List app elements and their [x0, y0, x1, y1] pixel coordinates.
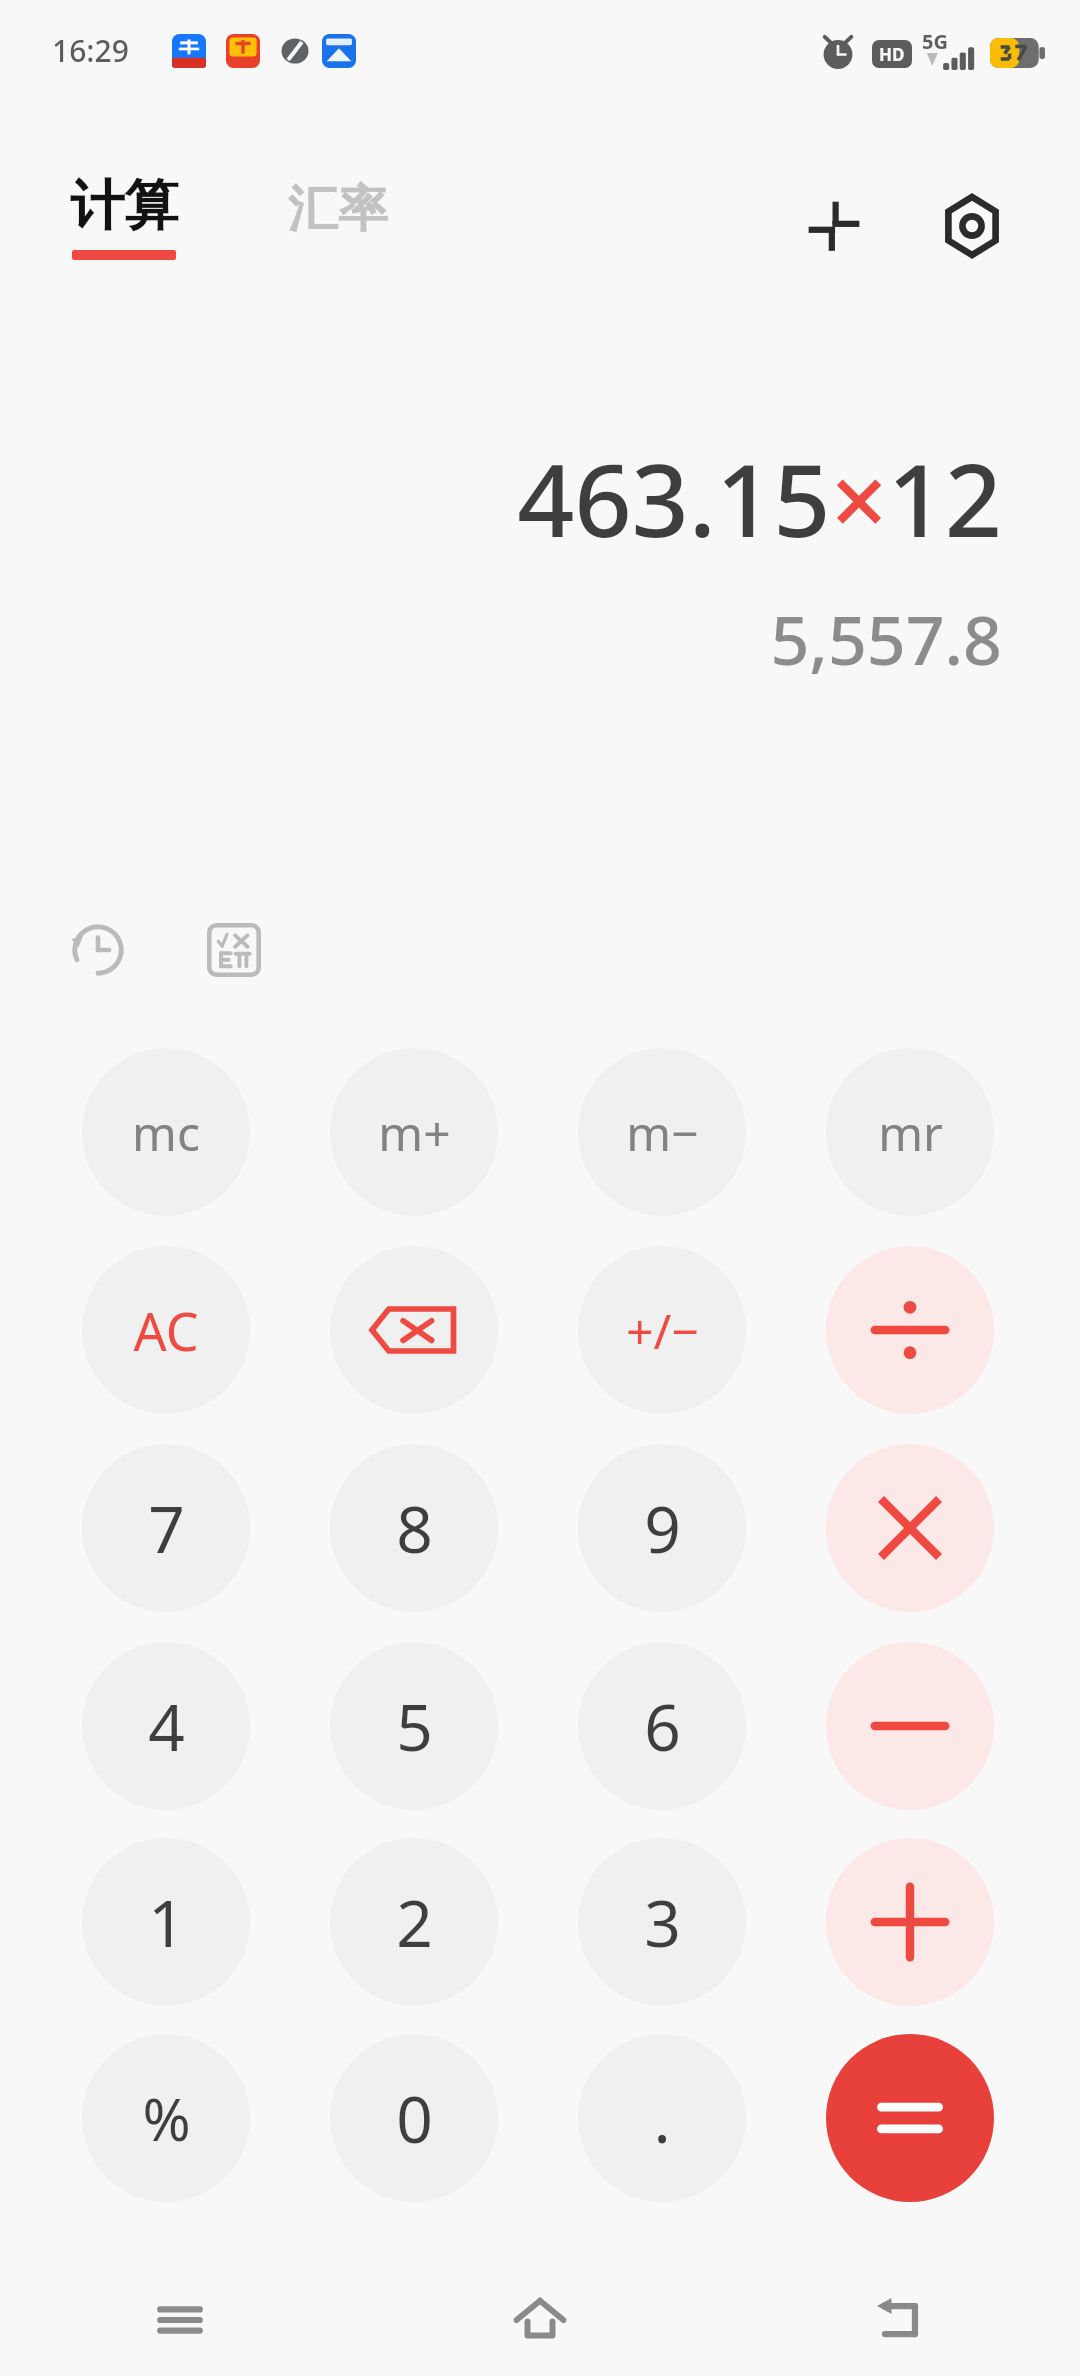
- staticText: 9: [644, 1485, 681, 1572]
- button[interactable]: Home: [360, 2264, 720, 2376]
- button[interactable]: 汇率: [288, 178, 388, 241]
- button[interactable]: mr: [826, 1048, 994, 1216]
- button[interactable]: %: [82, 2034, 250, 2202]
- staticText: 2: [396, 1879, 433, 1966]
- button[interactable]: Plus: [826, 1838, 994, 2006]
- button[interactable]: 1: [82, 1838, 250, 2006]
- button[interactable]: 2: [330, 1838, 498, 2006]
- staticText: m−: [626, 1100, 699, 1165]
- button[interactable]: Equals: [826, 2034, 994, 2202]
- staticText: 5,557.8: [770, 592, 1002, 685]
- staticText: 1: [148, 1879, 185, 1966]
- staticText: 6: [644, 1683, 681, 1770]
- staticText: 计算: [70, 172, 178, 240]
- button[interactable]: Scientific mode: [182, 898, 286, 1002]
- button[interactable]: 6: [578, 1642, 746, 1810]
- button[interactable]: Minus: [826, 1642, 994, 1810]
- button[interactable]: .: [578, 2034, 746, 2202]
- button[interactable]: 3: [578, 1838, 746, 2006]
- button[interactable]: Backspace: [330, 1246, 498, 1414]
- button[interactable]: 计算: [70, 172, 178, 260]
- staticText: 463.15×12: [517, 430, 1002, 566]
- button[interactable]: 9: [578, 1444, 746, 1612]
- staticText: 5: [396, 1683, 433, 1770]
- staticText: 16:29: [52, 30, 129, 71]
- staticText: %: [142, 2079, 191, 2158]
- button[interactable]: m+: [330, 1048, 498, 1216]
- button[interactable]: AC: [82, 1246, 250, 1414]
- staticText: 7: [148, 1485, 185, 1572]
- button[interactable]: mc: [82, 1048, 250, 1216]
- staticText: AC: [133, 1295, 199, 1366]
- button[interactable]: Multiply: [826, 1444, 994, 1612]
- button[interactable]: History: [46, 898, 150, 1002]
- staticText: mr: [878, 1100, 943, 1165]
- button[interactable]: Divide: [826, 1246, 994, 1414]
- staticText: +/−: [626, 1298, 699, 1363]
- staticText: m+: [378, 1100, 451, 1165]
- staticText: HD: [879, 43, 905, 66]
- button[interactable]: 7: [82, 1444, 250, 1612]
- staticText: 3: [644, 1879, 681, 1966]
- staticText: 8: [396, 1485, 433, 1572]
- button[interactable]: 4: [82, 1642, 250, 1810]
- button[interactable]: Recents: [0, 2264, 360, 2376]
- button[interactable]: Settings: [928, 182, 1016, 270]
- staticText: 4: [148, 1683, 185, 1770]
- staticText: 0: [396, 2075, 433, 2162]
- staticText: 汇率: [288, 178, 388, 241]
- button[interactable]: 8: [330, 1444, 498, 1612]
- button[interactable]: Back: [720, 2264, 1080, 2376]
- button[interactable]: Expand: [790, 182, 878, 270]
- staticText: mc: [132, 1100, 200, 1165]
- button[interactable]: 0: [330, 2034, 498, 2202]
- button[interactable]: m−: [578, 1048, 746, 1216]
- staticText: .: [653, 2075, 671, 2162]
- button[interactable]: +/−: [578, 1246, 746, 1414]
- button[interactable]: 5: [330, 1642, 498, 1810]
- staticText: 5G: [922, 28, 948, 55]
